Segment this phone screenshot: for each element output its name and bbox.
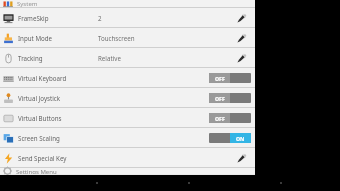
button[interactable]: Switch on bbox=[209, 133, 251, 143]
button[interactable]: FrameSkip bbox=[0, 8, 255, 28]
staticText: The DOSBox Team hopes y bbox=[18, 63, 96, 71]
staticText: Settings Menu bbox=[16, 168, 57, 174]
button[interactable]: Switch off bbox=[209, 113, 251, 123]
staticText: HAVE FUN! bbox=[18, 55, 49, 63]
button[interactable]: Recents bbox=[270, 175, 292, 191]
staticText: 2 bbox=[98, 14, 102, 22]
staticText: FrameSkip bbox=[18, 14, 90, 22]
button[interactable]: System bbox=[0, 0, 255, 8]
staticText: C:\>_ bbox=[4, 94, 21, 102]
button[interactable]: Edit bbox=[233, 10, 251, 26]
staticText: ON bbox=[236, 135, 245, 142]
staticText: For supported shell comm bbox=[18, 11, 99, 19]
staticText: OFF bbox=[215, 115, 225, 122]
staticText: Virtual Buttons bbox=[18, 114, 90, 122]
button[interactable]: Input Mode bbox=[0, 28, 255, 48]
staticText: DosBox Turbo for Android bbox=[4, 78, 85, 86]
button[interactable]: Switch off bbox=[209, 93, 251, 103]
staticText: OFF bbox=[215, 75, 225, 82]
button[interactable]: Settings Menu bbox=[0, 168, 255, 174]
button[interactable]: Virtual Joystick bbox=[0, 88, 255, 108]
staticText: Screen Scaling bbox=[18, 134, 90, 142]
button[interactable]: Edit bbox=[233, 30, 251, 46]
button[interactable]: Edit bbox=[233, 50, 251, 66]
button[interactable]: Back bbox=[86, 175, 108, 191]
button[interactable]: Screen Scaling bbox=[0, 128, 255, 148]
button[interactable]: Switch off bbox=[209, 73, 251, 83]
staticText: Send Special Key bbox=[18, 154, 90, 162]
staticText: For more information ab bbox=[18, 41, 96, 49]
staticText: OFF bbox=[215, 95, 225, 102]
staticText: To adjust the emulated C bbox=[18, 25, 99, 33]
button[interactable]: Virtual Buttons bbox=[0, 108, 255, 128]
button[interactable]: Send Special Key bbox=[0, 148, 255, 168]
staticText: To activate the keyboard bbox=[18, 33, 99, 41]
staticText: Virtual Keyboard bbox=[18, 74, 90, 82]
staticText: Tracking bbox=[18, 54, 90, 62]
button[interactable]: Edit bbox=[233, 150, 251, 166]
staticText: System bbox=[17, 0, 38, 8]
button[interactable]: Home bbox=[178, 175, 200, 191]
staticText: Virtual Joystick bbox=[18, 94, 90, 102]
staticText: Relative bbox=[98, 54, 121, 62]
button[interactable]: Tracking bbox=[0, 48, 255, 68]
staticText: For a short introduction bbox=[18, 3, 99, 11]
button[interactable]: Virtual Keyboard bbox=[0, 68, 255, 88]
staticText: Input Mode bbox=[18, 34, 90, 42]
staticText: Touchscreen bbox=[98, 34, 135, 42]
staticText: Drive C is mounted as bbox=[4, 86, 75, 94]
